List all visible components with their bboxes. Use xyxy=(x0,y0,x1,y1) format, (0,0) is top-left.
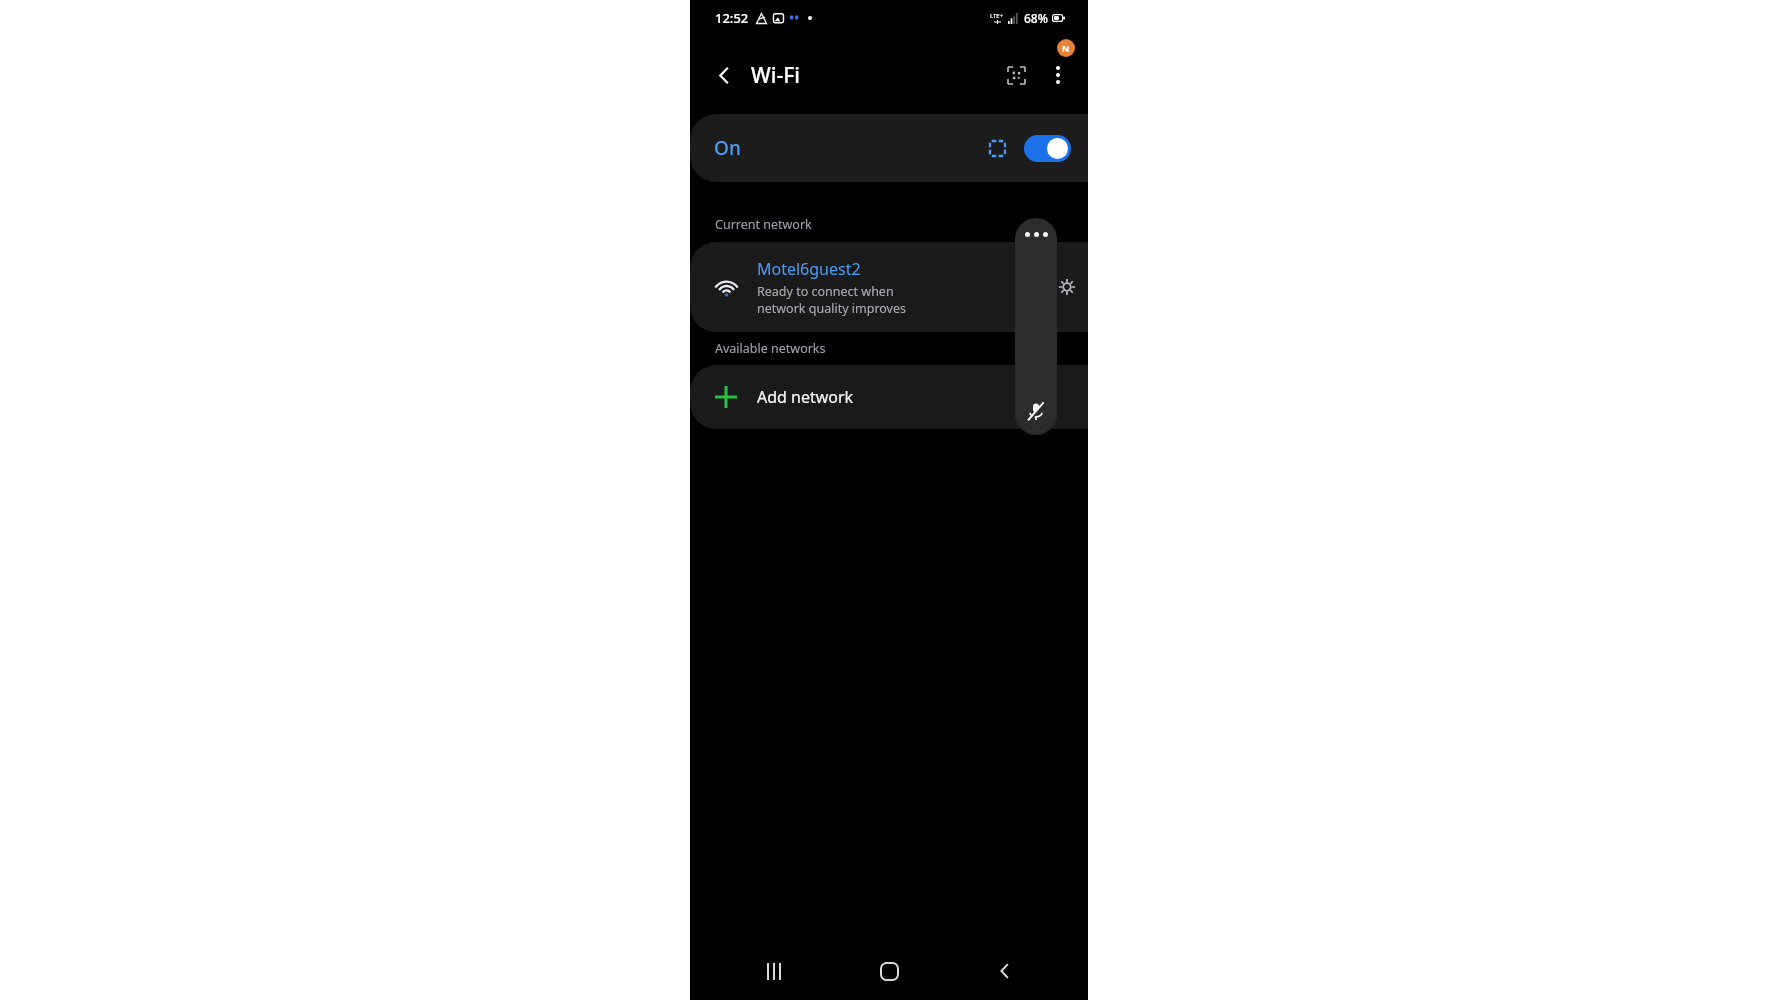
button[interactable]: Network settings xyxy=(1046,266,1088,308)
button[interactable]: Home xyxy=(857,942,921,1000)
staticText: N xyxy=(1062,42,1070,54)
button[interactable]: Recent apps xyxy=(742,942,806,1000)
staticText: Ready to connect when network quality im… xyxy=(757,283,906,316)
button[interactable]: Screen recorder controls xyxy=(1015,218,1057,435)
button[interactable]: On xyxy=(690,114,1088,182)
button[interactable]: Back xyxy=(701,52,747,98)
staticText: On xyxy=(714,135,741,161)
staticText: Add network xyxy=(757,386,854,408)
button[interactable]: Scan QR code xyxy=(995,54,1037,96)
staticText: 68% xyxy=(1024,10,1048,26)
staticText: Wi-Fi xyxy=(751,61,800,90)
button[interactable]: Add network xyxy=(690,365,1088,429)
button[interactable]: Wi-Fi toggle xyxy=(1024,135,1071,162)
staticText: 12:52 xyxy=(715,9,749,27)
button[interactable]: Wi-Fi Direct xyxy=(980,131,1014,165)
staticText: LTE+ xyxy=(990,12,1004,20)
button[interactable]: Network info xyxy=(1007,268,1045,306)
button[interactable]: Back xyxy=(973,942,1037,1000)
button[interactable]: More options xyxy=(1037,54,1079,96)
staticText: Motel6guest2 xyxy=(757,258,861,280)
staticText: Current network xyxy=(715,216,812,233)
button[interactable]: Motel6guest2 xyxy=(690,242,1088,332)
staticText: Available networks xyxy=(715,340,826,357)
